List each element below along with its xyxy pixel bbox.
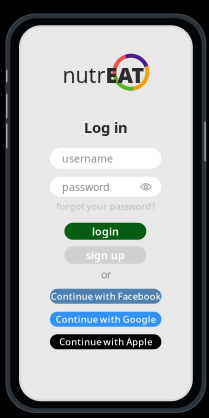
staticText: login: [92, 224, 119, 238]
staticText: Continue with Facebook: [51, 290, 161, 302]
button[interactable]: login: [64, 223, 146, 240]
staticText: forgot your password?: [56, 200, 155, 212]
staticText: Log in: [84, 117, 128, 137]
button[interactable]: forgot your password?: [21, 201, 190, 212]
staticText: EAT: [105, 61, 144, 89]
staticText: sign up: [86, 248, 125, 262]
button[interactable]: sign up: [64, 246, 146, 264]
staticText: password: [62, 180, 110, 194]
staticText: or: [101, 267, 111, 281]
button[interactable]: Continue with Facebook: [50, 289, 161, 304]
staticText: Continue with Google: [56, 313, 156, 325]
button[interactable]: Show password: [139, 180, 152, 193]
staticText: nutr: [62, 61, 105, 89]
button[interactable]: Continue with Apple: [50, 334, 161, 349]
button[interactable]: Continue with Google: [50, 312, 161, 327]
staticText: Continue with Apple: [59, 336, 152, 348]
staticText: username: [62, 151, 113, 165]
